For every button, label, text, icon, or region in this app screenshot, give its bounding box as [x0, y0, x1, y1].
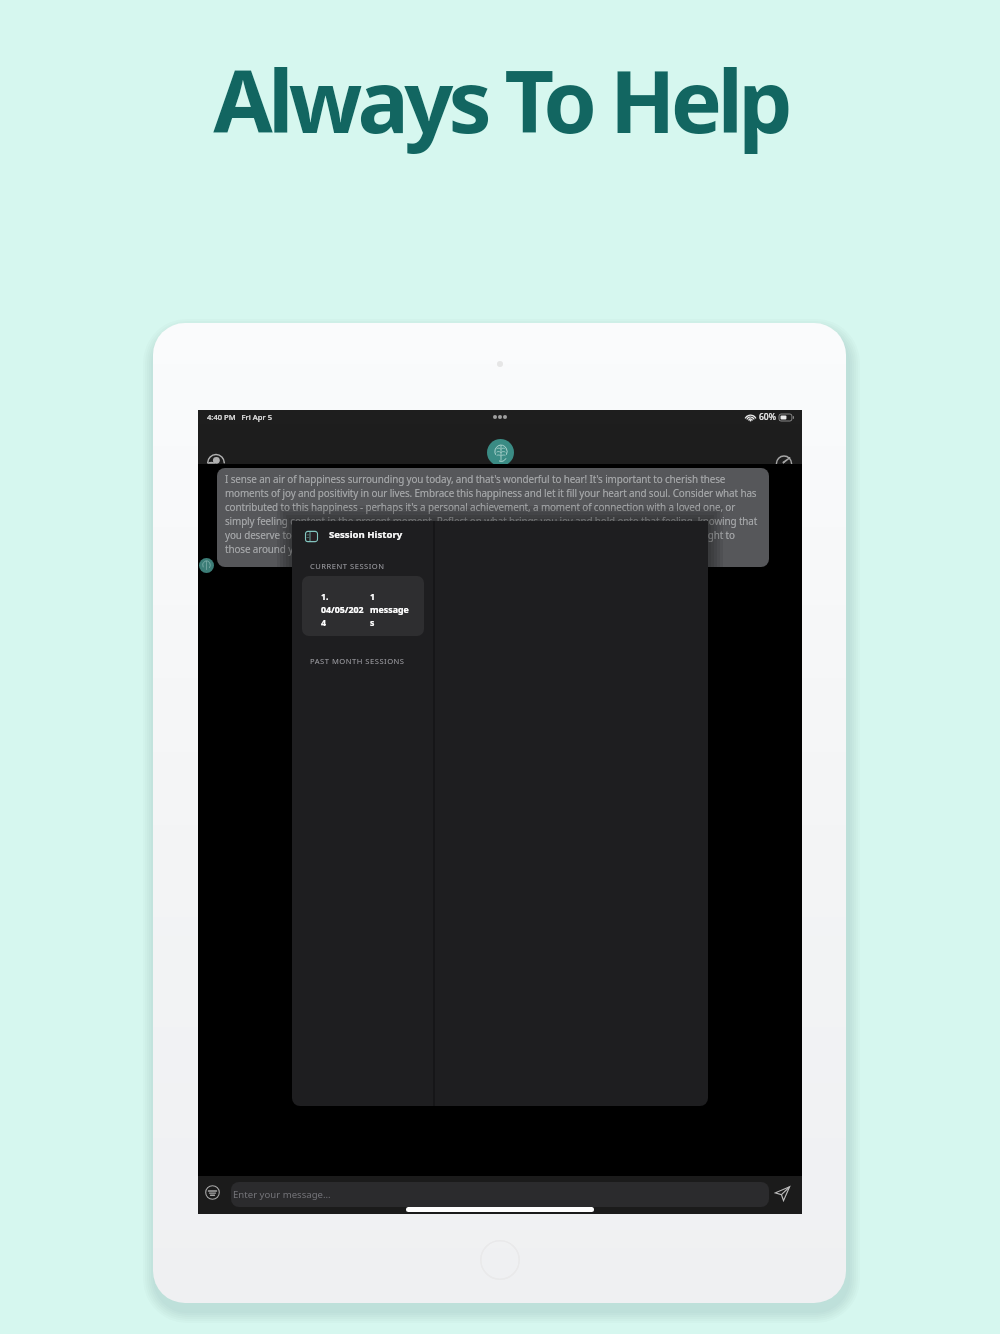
- button[interactable]: 1. 04/05/202 4: [302, 576, 424, 636]
- staticText: 1. 04/05/202 4: [321, 591, 364, 628]
- button[interactable]: Settings: [774, 446, 794, 466]
- staticText: PAST MONTH SESSIONS: [310, 656, 405, 666]
- staticText: Session History: [329, 528, 403, 541]
- staticText: I sense an air of happiness surrounding …: [225, 472, 761, 556]
- staticText: CURRENT SESSION: [310, 561, 385, 571]
- staticText: 60%: [759, 411, 776, 423]
- button[interactable]: Assistant: [487, 439, 514, 466]
- staticText: 1 message s: [370, 591, 409, 628]
- staticText: Enter your message...: [233, 1188, 331, 1201]
- button[interactable]: Send: [771, 1182, 793, 1204]
- button[interactable]: Options: [202, 1182, 222, 1202]
- staticText: 4:40 PM Fri Apr 5: [207, 412, 273, 422]
- button[interactable]: Enter your message...: [231, 1182, 769, 1207]
- button[interactable]: Profile: [206, 446, 226, 466]
- staticText: Always To Help: [213, 41, 788, 158]
- button[interactable]: Session History: [304, 526, 403, 546]
